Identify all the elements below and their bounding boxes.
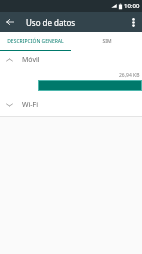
staticText: Uso de datos	[26, 17, 76, 28]
staticText: Wi-Fi	[22, 100, 39, 110]
button[interactable]: Wi-Fi	[0, 96, 142, 113]
button[interactable]: SIM	[71, 32, 142, 51]
staticText: Móvil	[22, 55, 40, 65]
staticText: SIM	[102, 38, 112, 45]
button[interactable]: Más opciones	[125, 14, 141, 30]
button[interactable]: DESCRIPCIÓN GENERAL	[0, 32, 71, 51]
staticText: 26,94 KB	[119, 72, 140, 79]
staticText: 10:00	[124, 2, 140, 10]
button[interactable]: Móvil	[0, 51, 142, 68]
staticText: DESCRIPCIÓN GENERAL	[7, 38, 64, 45]
button[interactable]: Atrás	[2, 14, 18, 30]
